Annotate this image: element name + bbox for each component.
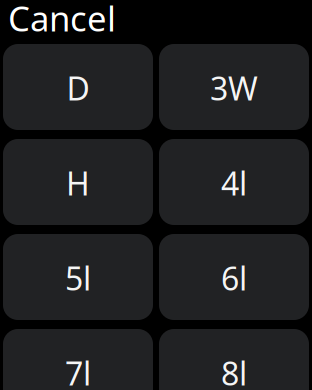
staticText: H (66, 162, 90, 204)
button[interactable]: H (3, 139, 153, 225)
staticText: 4l (221, 162, 247, 204)
button[interactable]: 7l (3, 329, 153, 390)
button[interactable]: Cancel (0, 0, 116, 36)
button[interactable]: 3W (159, 44, 309, 130)
button[interactable]: 6l (159, 234, 309, 320)
staticText: Cancel (8, 0, 116, 41)
button[interactable]: D (3, 44, 153, 130)
staticText: 6l (221, 257, 247, 299)
staticText: 8l (221, 352, 247, 390)
staticText: 3W (210, 67, 258, 109)
staticText: D (66, 67, 89, 109)
button[interactable]: 4l (159, 139, 309, 225)
button[interactable]: 5l (3, 234, 153, 320)
button[interactable]: 8l (159, 329, 309, 390)
staticText: 7l (65, 352, 91, 390)
staticText: 5l (65, 257, 91, 299)
